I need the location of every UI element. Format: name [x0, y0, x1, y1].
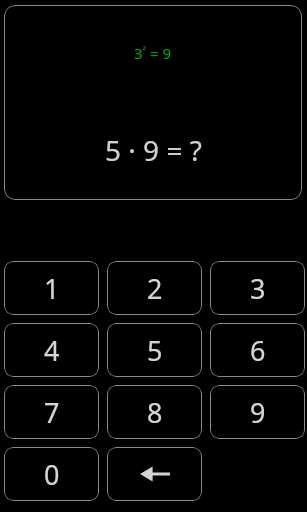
- staticText: 7: [44, 394, 60, 431]
- button[interactable]: 6: [210, 323, 305, 377]
- staticText: 5 · 9 = ?: [105, 131, 202, 169]
- button[interactable]: 7: [4, 385, 99, 439]
- staticText: 2: [147, 270, 163, 307]
- staticText: 4: [44, 332, 60, 369]
- button[interactable]: 9: [210, 385, 305, 439]
- button[interactable]: Backspace: [107, 447, 202, 501]
- staticText: 5: [147, 332, 163, 369]
- staticText: 6: [250, 332, 266, 369]
- button[interactable]: 5: [107, 323, 202, 377]
- button[interactable]: 2: [107, 261, 202, 315]
- staticText: 8: [147, 394, 163, 431]
- staticText: 0: [44, 456, 60, 493]
- button[interactable]: 3: [210, 261, 305, 315]
- button[interactable]: 8: [107, 385, 202, 439]
- button[interactable]: 4: [4, 323, 99, 377]
- button[interactable]: 1: [4, 261, 99, 315]
- staticText: 3² = 9: [134, 43, 172, 63]
- button[interactable]: 0: [4, 447, 99, 501]
- staticText: 1: [44, 270, 60, 307]
- staticText: 9: [250, 394, 266, 431]
- staticText: 3: [250, 270, 266, 307]
